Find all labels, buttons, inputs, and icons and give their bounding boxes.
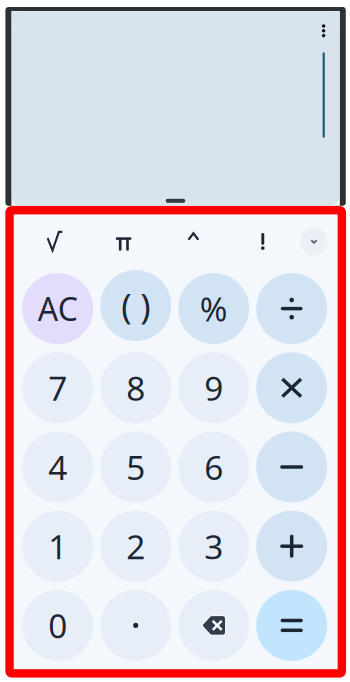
staticText: 6 [204, 445, 223, 489]
button[interactable]: 9 [178, 352, 249, 423]
button[interactable]: Minus [256, 431, 327, 502]
button[interactable]: AC [22, 273, 93, 344]
button[interactable]: Multiply [256, 352, 327, 423]
button[interactable]: Power [169, 214, 217, 258]
button[interactable]: 0 [22, 590, 93, 661]
button[interactable]: Backspace [178, 590, 249, 661]
button[interactable]: 7 [22, 352, 93, 423]
button[interactable]: 1 [22, 511, 93, 582]
staticText: 1 [48, 524, 67, 568]
button[interactable]: 2 [100, 511, 171, 582]
button[interactable]: 3 [178, 511, 249, 582]
button[interactable]: Decimal point [100, 590, 171, 661]
staticText: 4 [48, 445, 67, 489]
button[interactable]: % [178, 273, 249, 344]
staticText: 0 [48, 603, 67, 648]
staticText: 8 [126, 366, 145, 410]
staticText: % [200, 286, 228, 331]
button[interactable]: Pi [100, 222, 148, 266]
button[interactable]: Equals [256, 590, 327, 661]
button[interactable]: Divide [256, 273, 327, 344]
staticText: 2 [126, 524, 145, 568]
button[interactable]: ( ) [100, 270, 171, 341]
staticText: 5 [126, 445, 145, 489]
button[interactable]: 5 [100, 431, 171, 502]
button[interactable]: Plus [256, 511, 327, 582]
staticText: ( ) [121, 283, 150, 329]
button[interactable]: 6 [178, 431, 249, 502]
button[interactable]: More options [311, 16, 337, 46]
button[interactable]: Square root [31, 219, 79, 263]
button[interactable]: 4 [22, 431, 93, 502]
button[interactable]: 8 [100, 352, 171, 423]
button[interactable]: Show more functions [300, 228, 328, 255]
staticText: 3 [204, 524, 223, 568]
staticText: 9 [204, 366, 223, 410]
button[interactable]: Factorial [239, 219, 287, 263]
staticText: AC [38, 287, 78, 330]
staticText: 7 [48, 366, 67, 410]
